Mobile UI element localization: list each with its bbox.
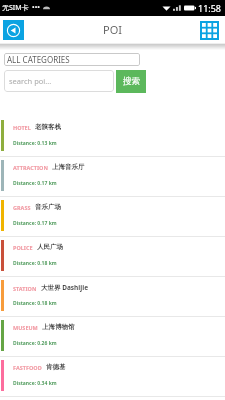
button[interactable]: Back bbox=[3, 20, 24, 40]
staticText: 大世界 Dashijie bbox=[41, 283, 89, 292]
staticText: Distance: 0.18 km bbox=[13, 260, 57, 267]
button[interactable]: Grid view bbox=[199, 20, 219, 40]
staticText: Distance: 0.18 km bbox=[13, 300, 57, 307]
button[interactable]: FASTFOOD bbox=[0, 357, 225, 396]
staticText: Distance: 0.26 km bbox=[13, 340, 57, 347]
staticText: 上海音乐厅 bbox=[52, 163, 85, 171]
button[interactable]: GRASS bbox=[0, 197, 225, 236]
staticText: 人民广场 bbox=[37, 243, 63, 251]
button[interactable]: POLICE bbox=[0, 237, 225, 276]
staticText: Distance: 0.17 km bbox=[13, 180, 57, 187]
button[interactable]: HOTEL bbox=[0, 117, 225, 156]
staticText: 上海博物馆 bbox=[42, 323, 75, 331]
staticText: STATION bbox=[13, 285, 37, 292]
staticText: ALL CATEGORIES bbox=[7, 54, 70, 65]
button[interactable]: 搜索 bbox=[116, 70, 146, 93]
staticText: POI bbox=[103, 22, 122, 37]
staticText: Distance: 0.13 km bbox=[13, 140, 57, 147]
staticText: GRASS bbox=[13, 204, 31, 211]
staticText: search poi... bbox=[9, 76, 52, 86]
staticText: 搜索 bbox=[123, 76, 140, 87]
button[interactable]: search poi... bbox=[4, 70, 114, 92]
staticText: 音乐广场 bbox=[35, 203, 61, 211]
button[interactable]: MUSEUM bbox=[0, 317, 225, 356]
staticText: FASTFOOD bbox=[13, 364, 42, 371]
staticText: 无SIM卡 bbox=[2, 3, 29, 13]
staticText: HOTEL bbox=[13, 124, 31, 131]
staticText: 11:58 bbox=[198, 2, 222, 14]
button[interactable]: ATTRACTION bbox=[0, 157, 225, 196]
staticText: ATTRACTION bbox=[13, 164, 48, 171]
staticText: 肯德基 bbox=[46, 363, 66, 371]
button[interactable]: ALL CATEGORIES bbox=[4, 53, 140, 66]
staticText: Distance: 0.34 km bbox=[13, 380, 57, 387]
staticText: ••• bbox=[32, 3, 40, 13]
staticText: 老陕客栈 bbox=[35, 123, 61, 131]
button[interactable]: STATION bbox=[0, 277, 225, 316]
staticText: Distance: 0.17 km bbox=[13, 220, 57, 227]
staticText: POLICE bbox=[13, 244, 33, 251]
staticText: MUSEUM bbox=[13, 324, 38, 331]
